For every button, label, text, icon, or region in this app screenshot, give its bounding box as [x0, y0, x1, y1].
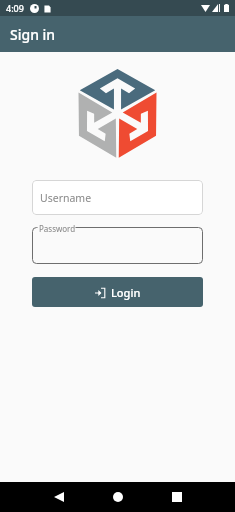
staticText: Login	[111, 285, 141, 300]
button[interactable]: Recent apps	[147, 482, 206, 512]
staticText: Password	[39, 223, 76, 234]
button[interactable]: Back	[29, 482, 88, 512]
staticText: Sign in	[10, 25, 56, 44]
staticText: 4:09	[6, 2, 24, 14]
button[interactable]: Login	[32, 277, 203, 307]
button[interactable]: Password	[32, 227, 203, 264]
button[interactable]: Username	[32, 180, 203, 215]
button[interactable]: Home	[88, 482, 147, 512]
staticText: Username	[40, 191, 92, 205]
